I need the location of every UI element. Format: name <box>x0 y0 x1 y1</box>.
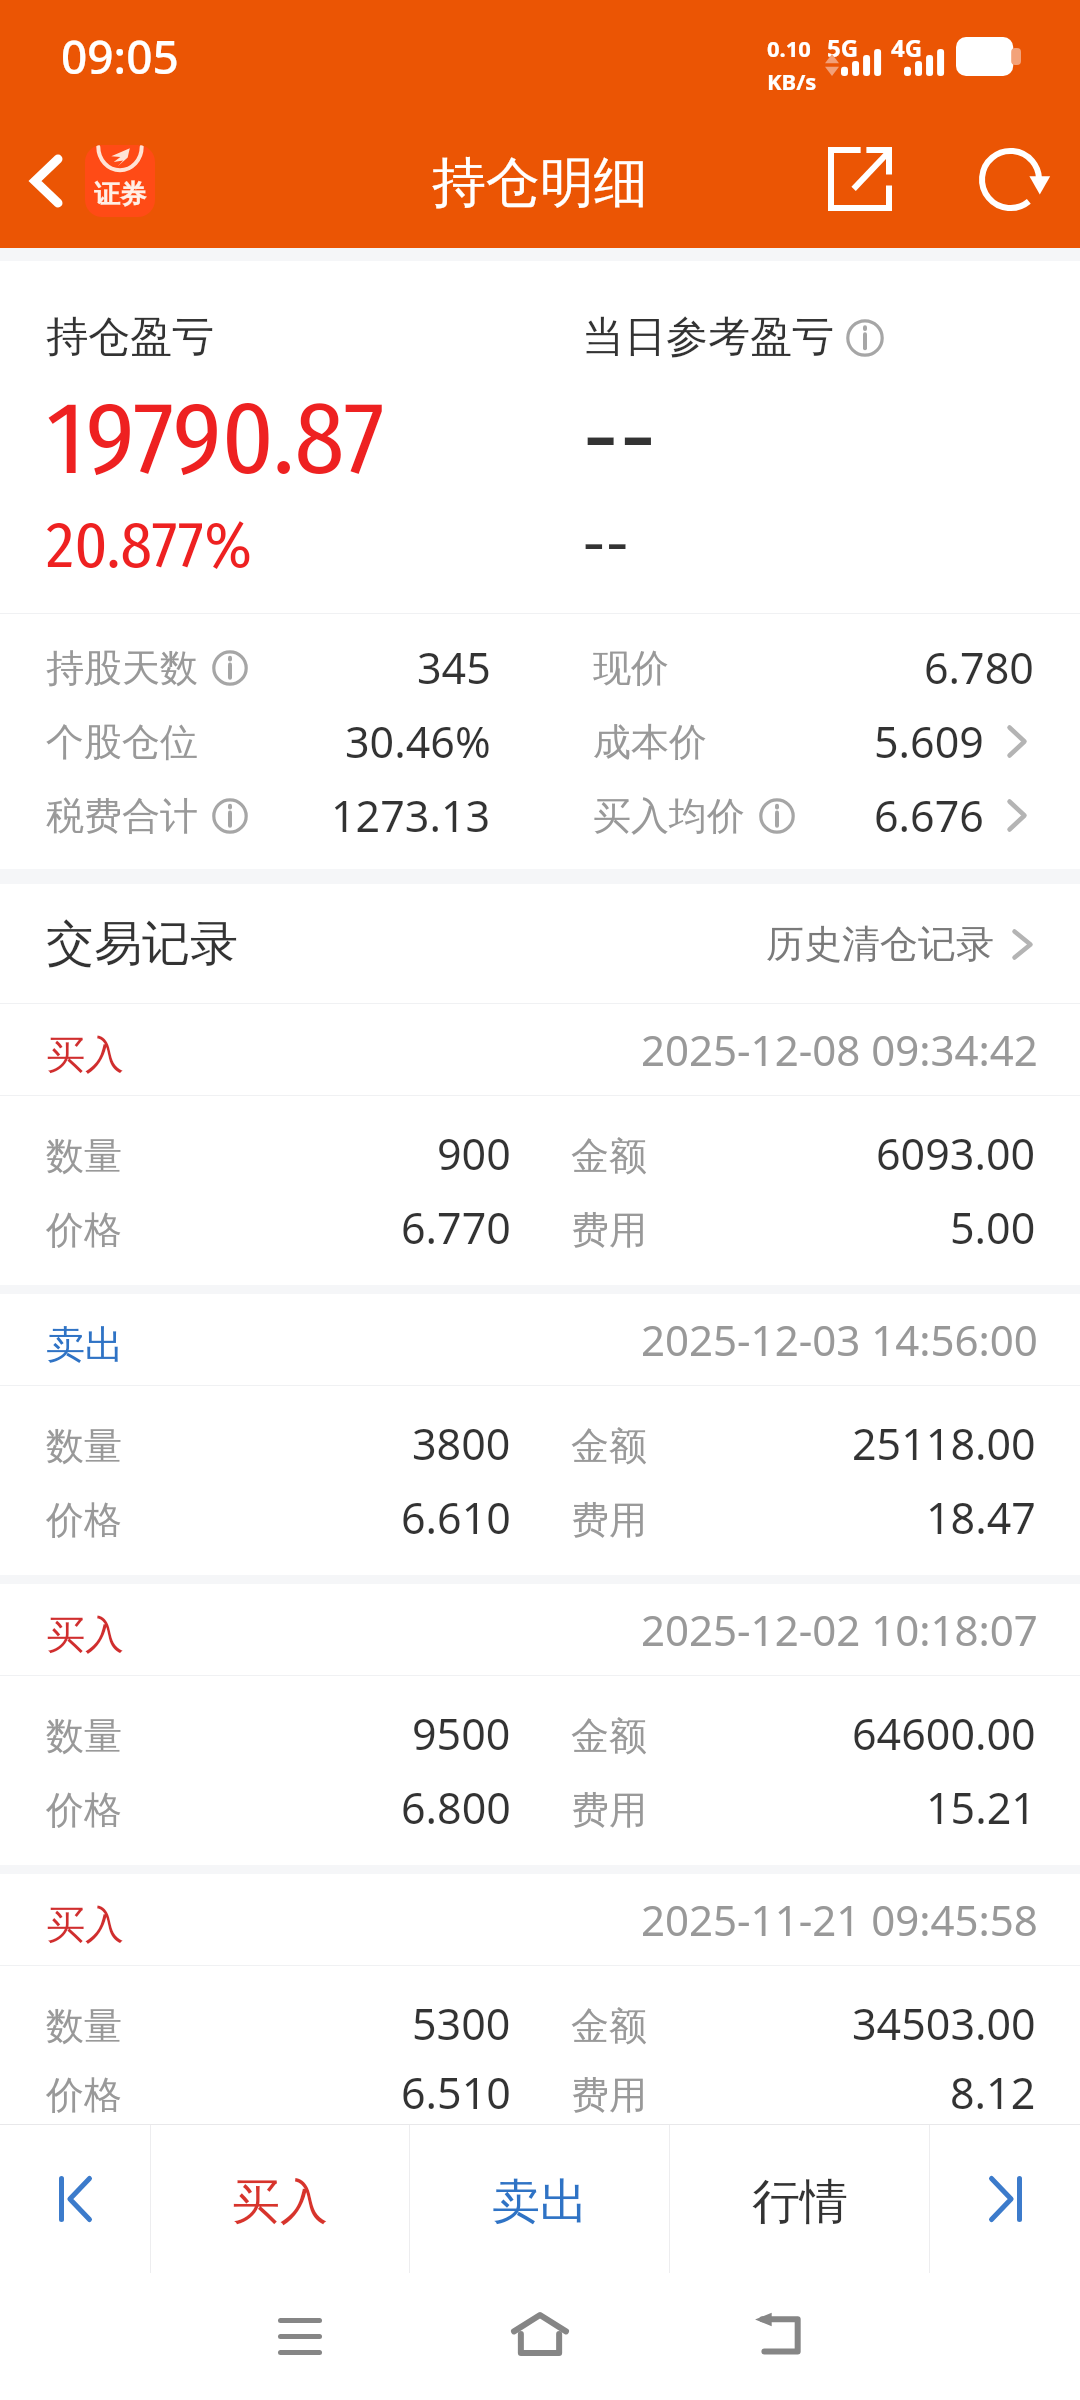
button[interactable]: 买入 <box>0 1584 1080 1865</box>
staticText: 5.609 <box>874 712 984 771</box>
staticText: 数量 <box>46 2002 122 2050</box>
staticText: 6.770 <box>401 1198 511 1257</box>
staticText: 买入 <box>46 1030 124 1079</box>
button[interactable]: 历史清仓记录 <box>766 904 1035 984</box>
staticText: 09:05 <box>61 25 179 88</box>
staticText: 5300 <box>412 1994 511 2053</box>
staticText: 费用 <box>571 2071 647 2119</box>
button[interactable]: Back <box>715 2273 845 2400</box>
staticText: 1273.13 <box>331 786 491 845</box>
button[interactable]: First page <box>0 2125 150 2273</box>
staticText: 345 <box>417 638 491 697</box>
staticText: 数量 <box>46 1712 122 1760</box>
staticText: 5G <box>827 31 859 64</box>
staticText: 买入 <box>46 1610 124 1659</box>
button[interactable]: Back <box>6 136 86 226</box>
button[interactable]: 买入 <box>0 1874 1080 2124</box>
staticText: 行情 <box>752 2172 848 2232</box>
staticText: 9500 <box>412 1704 511 1763</box>
staticText: KB/s <box>767 66 817 96</box>
staticText: 买入均价 <box>593 792 745 840</box>
staticText: 价格 <box>46 1206 122 1254</box>
button[interactable]: Refresh <box>966 135 1054 223</box>
button[interactable]: 卖出 <box>410 2125 669 2273</box>
staticText: 持仓盈亏 <box>46 311 214 364</box>
staticText: 个股仓位 <box>46 718 198 766</box>
staticText: 卖出 <box>46 1320 124 1369</box>
staticText: 买入 <box>46 1900 124 1949</box>
button[interactable]: Home <box>475 2273 605 2400</box>
staticText: 6.800 <box>401 1778 511 1837</box>
staticText: 6.510 <box>401 2063 511 2122</box>
staticText: 数量 <box>46 1422 122 1470</box>
staticText: -- <box>582 507 630 584</box>
staticText: 持股天数 <box>46 644 198 692</box>
staticText: 费用 <box>571 1206 647 1254</box>
staticText: 34503.00 <box>852 1994 1036 2053</box>
staticText: 25118.00 <box>852 1414 1036 1473</box>
staticText: 买入 <box>232 2172 328 2232</box>
button[interactable]: 买入均价 <box>593 786 1034 845</box>
staticText: 费用 <box>571 1786 647 1834</box>
staticText: 2025-12-02 10:18:07 <box>641 1601 1038 1658</box>
button[interactable]: Last page <box>930 2125 1080 2273</box>
staticText: 5.00 <box>950 1198 1036 1257</box>
staticText: 成本价 <box>593 718 707 766</box>
staticText: 3800 <box>412 1414 511 1473</box>
button[interactable]: 买入 <box>151 2125 409 2273</box>
button[interactable]: Share <box>816 135 904 223</box>
staticText: 6093.00 <box>876 1124 1036 1183</box>
staticText: 18.47 <box>926 1488 1036 1547</box>
staticText: 数量 <box>46 1132 122 1180</box>
staticText: 现价 <box>593 644 669 692</box>
staticText: 900 <box>437 1124 511 1183</box>
staticText: 2025-11-21 09:45:58 <box>641 1891 1038 1948</box>
staticText: 费用 <box>571 1496 647 1544</box>
staticText: 15.21 <box>926 1778 1036 1837</box>
staticText: 2025-12-03 14:56:00 <box>641 1311 1038 1368</box>
staticText: 金额 <box>571 1132 647 1180</box>
staticText: 证券 <box>94 178 146 211</box>
staticText: 价格 <box>46 1496 122 1544</box>
staticText: 金额 <box>571 1422 647 1470</box>
staticText: 6.780 <box>924 638 1034 697</box>
staticText: 8.12 <box>950 2063 1036 2122</box>
button[interactable]: 成本价 <box>593 712 1034 771</box>
staticText: 64600.00 <box>852 1704 1036 1763</box>
staticText: -- <box>582 379 657 500</box>
staticText: 税费合计 <box>46 792 198 840</box>
staticText: 金额 <box>571 2002 647 2050</box>
staticText: 0.10 <box>767 33 811 63</box>
staticText: 2025-12-08 09:34:42 <box>641 1021 1038 1078</box>
staticText: 30.46% <box>345 712 491 771</box>
staticText: 交易记录 <box>46 914 238 974</box>
staticText: 金额 <box>571 1712 647 1760</box>
staticText: 20.877% <box>46 507 253 584</box>
button[interactable]: 买入 <box>0 1004 1080 1285</box>
staticText: 19790.87 <box>46 379 385 500</box>
staticText: 卖出 <box>492 2172 588 2232</box>
staticText: 价格 <box>46 1786 122 1834</box>
staticText: 6.676 <box>874 786 984 845</box>
staticText: 4G <box>891 31 923 64</box>
button[interactable]: 卖出 <box>0 1294 1080 1575</box>
staticText: 历史清仓记录 <box>766 920 994 968</box>
button[interactable]: Recents <box>235 2273 365 2400</box>
button[interactable]: 行情 <box>670 2125 929 2273</box>
staticText: 6.610 <box>401 1488 511 1547</box>
staticText: 价格 <box>46 2071 122 2119</box>
staticText: 当日参考盈亏 <box>582 311 834 364</box>
staticText: 持仓明细 <box>432 149 648 217</box>
